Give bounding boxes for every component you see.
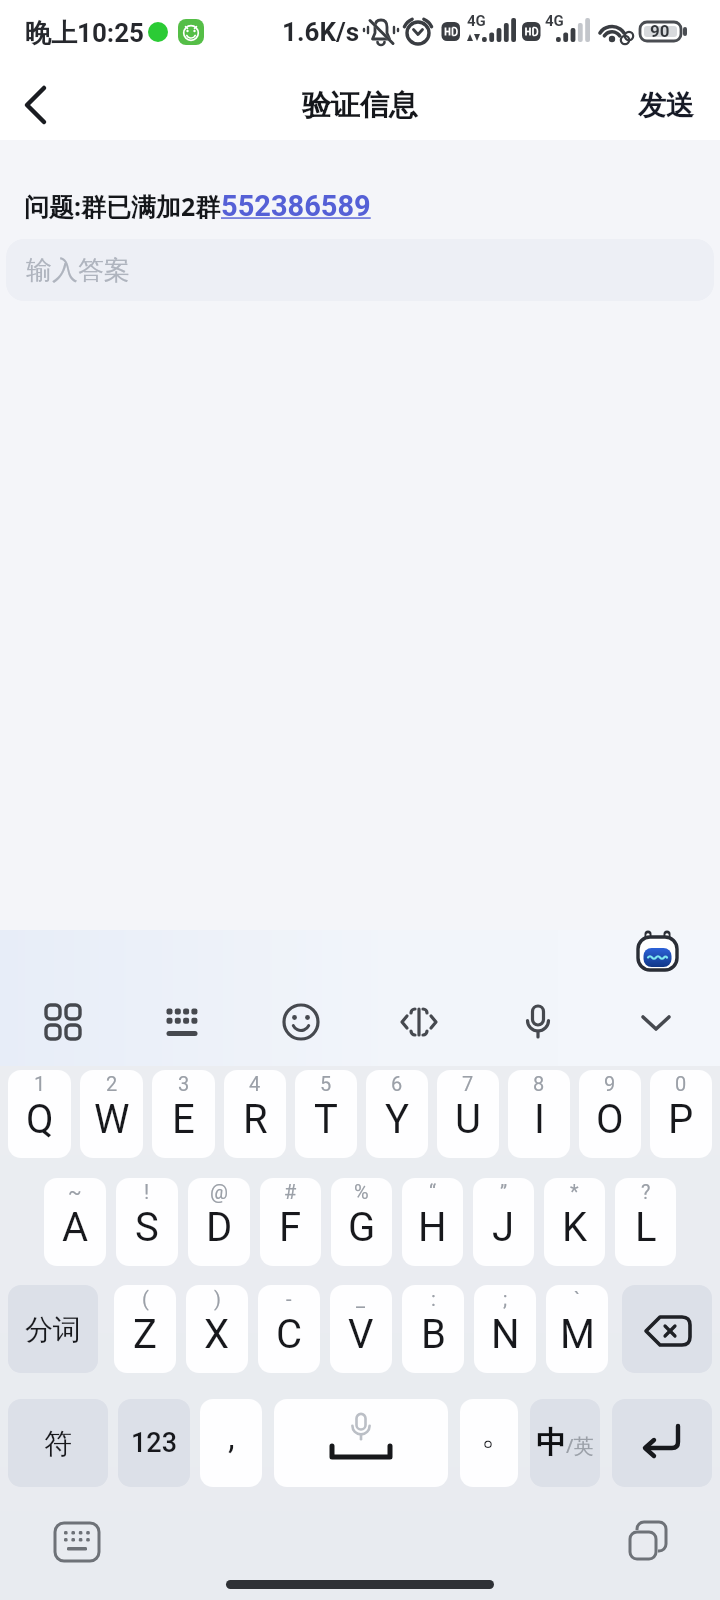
button[interactable]: * — [544, 1178, 605, 1266]
staticText: I — [534, 1096, 545, 1143]
button[interactable]: ` — [546, 1285, 608, 1373]
button[interactable]: 6 — [366, 1070, 428, 1158]
staticText: D — [206, 1204, 233, 1251]
staticText: 符 — [44, 1426, 72, 1461]
staticText: 5 — [320, 1072, 332, 1095]
staticText: 7 — [462, 1072, 474, 1095]
button[interactable]: 3 — [152, 1070, 215, 1158]
staticText: ? — [641, 1180, 651, 1203]
staticText: /英 — [566, 1432, 594, 1459]
button[interactable] — [395, 998, 443, 1046]
staticText: 90 — [650, 21, 670, 41]
staticText: W — [94, 1096, 130, 1143]
button[interactable] — [632, 998, 680, 1046]
button[interactable] — [274, 1399, 448, 1487]
button[interactable] — [39, 998, 87, 1046]
staticText: 4G — [545, 12, 564, 30]
staticText: 1.6K/s — [282, 17, 360, 47]
button[interactable]: , — [200, 1399, 262, 1487]
staticText: 晚上10:25 — [25, 17, 145, 50]
button[interactable]: ( — [114, 1285, 176, 1373]
staticText: 3 — [178, 1072, 190, 1095]
staticText: , — [228, 1417, 235, 1457]
button[interactable]: _ — [330, 1285, 392, 1373]
button[interactable]: 2 — [80, 1070, 143, 1158]
staticText: 问题:群已满加2群 — [24, 189, 221, 223]
staticText: 验证信息 — [302, 87, 418, 124]
staticText: 8 — [533, 1072, 545, 1095]
staticText: 分词 — [25, 1312, 81, 1347]
button[interactable]: % — [331, 1178, 392, 1266]
button[interactable]: 8 — [508, 1070, 570, 1158]
button[interactable] — [624, 1518, 672, 1566]
staticText: 输入答案 — [26, 254, 130, 287]
button[interactable]: ? — [615, 1178, 676, 1266]
staticText: R — [243, 1096, 268, 1143]
button[interactable] — [158, 998, 206, 1046]
button[interactable]: 中 — [530, 1399, 600, 1487]
staticText: G — [348, 1204, 376, 1251]
staticText: S — [135, 1204, 159, 1251]
button[interactable]: 发送 — [638, 88, 694, 123]
button[interactable]: ) — [186, 1285, 248, 1373]
staticText: - — [286, 1287, 292, 1310]
button[interactable]: 1 — [8, 1070, 71, 1158]
staticText: N — [491, 1311, 520, 1358]
staticText: ! — [144, 1180, 150, 1203]
staticText: E — [172, 1096, 195, 1143]
staticText: V — [348, 1311, 374, 1358]
staticText: Z — [133, 1311, 157, 1358]
staticText: 1 — [34, 1072, 46, 1095]
staticText: 123 — [131, 1427, 178, 1459]
staticText: 9 — [604, 1072, 616, 1095]
staticText: ` — [574, 1287, 581, 1310]
staticText: 2 — [106, 1072, 118, 1095]
staticText: K — [562, 1204, 588, 1251]
button[interactable]: ! — [116, 1178, 178, 1266]
staticText: B — [421, 1311, 446, 1358]
button[interactable]: 符 — [8, 1399, 108, 1487]
staticText: ~ — [68, 1180, 82, 1203]
staticText: 4 — [249, 1072, 261, 1095]
button[interactable]: 输入答案 — [6, 239, 714, 301]
staticText: : — [431, 1287, 436, 1310]
staticText: 中 — [536, 1424, 566, 1462]
staticText: ( — [142, 1287, 149, 1310]
button[interactable]: - — [258, 1285, 320, 1373]
button[interactable] — [622, 1285, 712, 1373]
button[interactable]: ; — [474, 1285, 536, 1373]
button[interactable]: 7 — [437, 1070, 499, 1158]
staticText: C — [276, 1311, 303, 1358]
button[interactable] — [53, 1518, 101, 1566]
button[interactable]: 123 — [118, 1399, 190, 1487]
button[interactable]: # — [260, 1178, 321, 1266]
staticText: ) — [214, 1287, 221, 1310]
button[interactable]: 。 — [460, 1399, 518, 1487]
staticText: # — [284, 1180, 297, 1203]
button[interactable] — [277, 998, 325, 1046]
staticText: 0 — [675, 1072, 687, 1095]
staticText: J — [492, 1204, 515, 1251]
button[interactable]: @ — [188, 1178, 250, 1266]
staticText: H — [418, 1204, 447, 1251]
staticText: 4G — [467, 12, 486, 30]
button[interactable] — [10, 80, 60, 130]
button[interactable]: ~ — [44, 1178, 106, 1266]
staticText: Q — [26, 1096, 54, 1143]
button[interactable]: 5 — [295, 1070, 357, 1158]
button[interactable]: 552386589 — [221, 189, 371, 223]
staticText: “ — [429, 1180, 437, 1203]
button[interactable]: 9 — [579, 1070, 641, 1158]
staticText: F — [279, 1204, 302, 1251]
button[interactable]: ” — [473, 1178, 534, 1266]
button[interactable]: 4 — [224, 1070, 286, 1158]
button[interactable] — [514, 998, 562, 1046]
button[interactable]: 分词 — [8, 1285, 98, 1373]
staticText: 发送 — [638, 88, 694, 123]
button[interactable]: 0 — [650, 1070, 712, 1158]
staticText: _ — [356, 1287, 366, 1310]
button[interactable]: “ — [402, 1178, 463, 1266]
button[interactable] — [634, 924, 682, 972]
button[interactable]: : — [402, 1285, 464, 1373]
button[interactable] — [612, 1399, 712, 1487]
